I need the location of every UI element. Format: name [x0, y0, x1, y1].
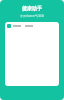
staticText: 今天也要元气满满 [20, 14, 44, 18]
staticText: 健康助手 [22, 5, 42, 11]
